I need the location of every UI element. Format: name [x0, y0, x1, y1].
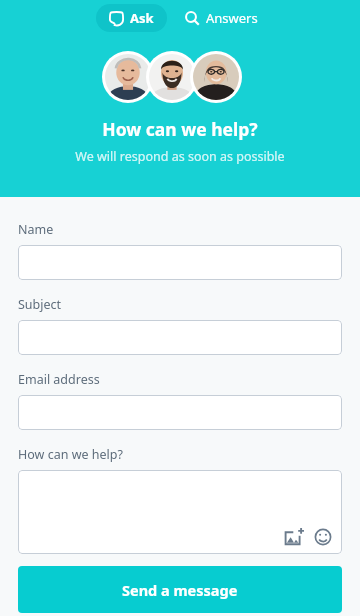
button[interactable]: Answers [179, 4, 264, 32]
button[interactable] [18, 320, 342, 355]
staticText: Email address [18, 371, 100, 388]
button[interactable]: Send a message [18, 566, 342, 613]
button[interactable]: Attach image [284, 527, 304, 547]
staticText: Ask [130, 9, 154, 27]
staticText: How can we help? [102, 117, 258, 141]
staticText: How can we help? [18, 446, 123, 463]
staticText: Send a message [122, 580, 238, 600]
button[interactable]: Attach image [18, 470, 342, 554]
button[interactable]: Insert emoji [313, 527, 333, 547]
staticText: Name [18, 221, 54, 238]
staticText: Answers [206, 9, 258, 27]
button[interactable] [18, 245, 342, 280]
staticText: Subject [18, 296, 62, 313]
button[interactable]: Ask [96, 4, 167, 32]
button[interactable] [18, 395, 342, 430]
staticText: We will respond as soon as possible [75, 148, 285, 165]
